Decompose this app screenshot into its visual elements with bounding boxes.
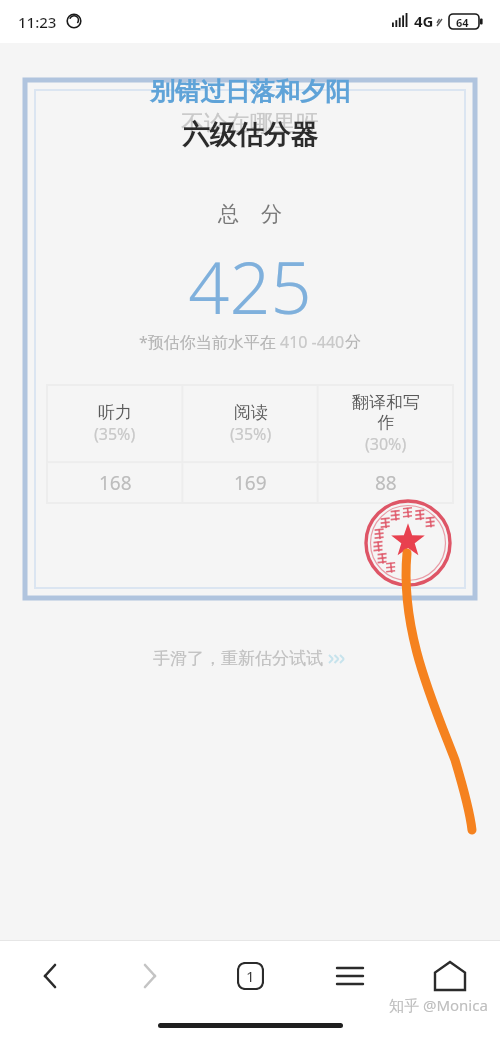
button[interactable]: 听力 [47, 385, 183, 462]
staticText: (30%) [365, 433, 407, 455]
staticText: *预估你当前水平在 [139, 331, 280, 353]
staticText: 知乎 @Monica [389, 995, 488, 1015]
staticText: 六级估分器 [0, 118, 500, 152]
staticText: 听力 [98, 402, 132, 423]
staticText: 88 [375, 470, 397, 496]
staticText: 425 [0, 237, 500, 335]
staticText: 总 分 [0, 199, 500, 228]
staticText: 手滑了，重新估分试试 [153, 648, 323, 669]
staticText: 别错过日落和夕阳 [0, 76, 500, 107]
staticText: 64 [456, 15, 469, 30]
button[interactable]: Back [0, 941, 100, 1011]
button[interactable]: Forward [100, 941, 200, 1011]
staticText: (35%) [230, 423, 272, 445]
button[interactable]: 手滑了，重新估分试试 [0, 644, 500, 673]
staticText: 4G [414, 11, 434, 31]
button[interactable]: 阅读 [183, 385, 318, 462]
button[interactable]: Menu [300, 941, 400, 1011]
button[interactable]: 翻译和写 作 [318, 385, 453, 462]
other: 官方认证印章 [364, 499, 452, 587]
staticText: 翻译和写 作 [352, 392, 420, 433]
staticText: 11:23 [18, 12, 57, 32]
staticText: 阅读 [234, 402, 268, 423]
staticText: (35%) [94, 423, 136, 445]
staticText: 分 [345, 332, 361, 352]
staticText: 1 [246, 966, 255, 986]
staticText: 410 -440 [280, 331, 345, 353]
staticText: 168 [99, 470, 132, 496]
button[interactable]: Tabs [200, 941, 300, 1011]
staticText: 169 [234, 470, 267, 496]
button[interactable]: Home [400, 941, 500, 1011]
staticText: 不论在哪里呀 [0, 109, 500, 138]
